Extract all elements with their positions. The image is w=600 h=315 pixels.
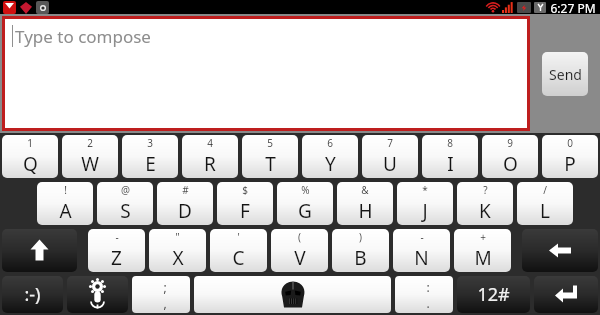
button[interactable]: " [149, 229, 206, 272]
staticText: K [479, 198, 491, 224]
button[interactable]: 7 [362, 135, 418, 178]
button[interactable]: % [277, 182, 333, 225]
staticText: 0 [567, 136, 573, 150]
staticText: Z [111, 245, 122, 271]
button[interactable]: ) [332, 229, 389, 272]
staticText: ; [163, 279, 167, 295]
button[interactable]: Shift [2, 229, 77, 272]
staticText: C [232, 245, 245, 271]
staticText: 6:27 PM [550, 0, 596, 14]
staticText: Y [325, 151, 336, 177]
staticText: 5 [267, 136, 273, 150]
staticText: F [240, 198, 250, 224]
button[interactable]: 4 [182, 135, 238, 178]
staticText: E [145, 151, 156, 177]
staticText: ) [359, 230, 362, 244]
staticText: P [564, 151, 576, 177]
staticText: 12# [477, 282, 510, 307]
staticText: " [175, 230, 180, 244]
button[interactable]: Send [542, 52, 588, 96]
button[interactable]: Backspace [522, 229, 598, 272]
button[interactable]: ( [271, 229, 328, 272]
staticText: ! [64, 183, 67, 197]
staticText: B [354, 245, 367, 271]
staticText: + [480, 230, 486, 244]
button[interactable]: * [397, 182, 453, 225]
staticText: Q [23, 151, 38, 177]
button[interactable]: 6 [302, 135, 358, 178]
staticText: M [474, 245, 492, 271]
button[interactable]: Type to compose [5, 19, 527, 128]
staticText: I [447, 151, 454, 177]
staticText: T [265, 151, 276, 177]
staticText: / [543, 183, 547, 197]
staticText: 3 [147, 136, 153, 150]
staticText: ( [298, 230, 301, 244]
staticText: 7 [387, 136, 393, 150]
staticText: J [422, 198, 428, 224]
staticText: - [115, 230, 119, 244]
staticText: & [361, 183, 369, 197]
button[interactable]: + [454, 229, 511, 272]
staticText: U [383, 151, 397, 177]
button[interactable]: 2 [62, 135, 118, 178]
staticText: ' [237, 230, 240, 244]
button[interactable]: Numbers and symbols [457, 276, 530, 313]
staticText: D [178, 198, 192, 224]
staticText: O [503, 151, 518, 177]
staticText: 8 [447, 136, 453, 150]
button[interactable]: 5 [242, 135, 298, 178]
staticText: G [298, 198, 312, 224]
button[interactable]: / [517, 182, 573, 225]
staticText: X [172, 245, 184, 271]
staticText: 4 [207, 136, 213, 150]
staticText: : [426, 279, 430, 295]
button[interactable]: & [337, 182, 393, 225]
staticText: R [204, 151, 216, 177]
staticText: H [358, 198, 373, 224]
button[interactable]: 0 [542, 135, 598, 178]
staticText: Send [549, 65, 582, 84]
button[interactable]: - [393, 229, 450, 272]
staticText: $ [242, 183, 248, 197]
button[interactable]: 1 [2, 135, 58, 178]
staticText: W [81, 151, 99, 177]
button[interactable]: ? [457, 182, 513, 225]
button[interactable]: @ [97, 182, 153, 225]
staticText: A [59, 198, 72, 224]
button[interactable]: Voice input [67, 276, 128, 313]
staticText: 1 [27, 136, 33, 150]
staticText: * [422, 183, 428, 197]
button[interactable]: # [157, 182, 213, 225]
button[interactable]: 9 [482, 135, 538, 178]
button[interactable]: $ [217, 182, 273, 225]
button[interactable]: ' [210, 229, 267, 272]
button[interactable]: ! [37, 182, 93, 225]
button[interactable]: Enter [534, 276, 598, 313]
staticText: # [182, 183, 189, 197]
staticText: S [120, 198, 131, 224]
staticText: 9 [507, 136, 513, 150]
button[interactable]: : [395, 276, 453, 313]
button[interactable]: - [88, 229, 145, 272]
button[interactable]: 8 [422, 135, 478, 178]
button[interactable]: 3 [122, 135, 178, 178]
staticText: % [301, 183, 310, 197]
staticText: 2 [87, 136, 93, 150]
button[interactable]: Emoji [2, 276, 63, 313]
staticText: - [420, 230, 424, 244]
staticText: , [163, 295, 167, 311]
staticText: V [294, 245, 306, 271]
staticText: :-) [24, 282, 41, 307]
button[interactable]: ; [132, 276, 190, 313]
button[interactable]: Space [194, 276, 391, 313]
staticText: N [414, 245, 429, 271]
staticText: ? [483, 183, 488, 197]
staticText: L [540, 198, 550, 224]
staticText: @ [121, 183, 130, 197]
staticText: Type to compose [15, 25, 151, 48]
staticText: . [426, 295, 430, 311]
staticText: 6 [327, 136, 333, 150]
